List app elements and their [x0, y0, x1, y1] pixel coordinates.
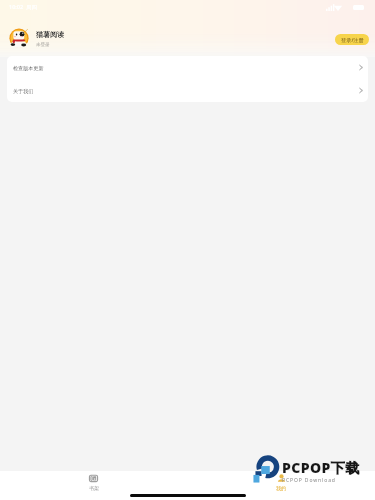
button[interactable]: 关于我们 [7, 79, 368, 102]
staticText: 猫薯阅读 [36, 30, 64, 39]
staticText: 未登录 [36, 42, 50, 48]
staticText: 我的 [276, 485, 286, 491]
staticText: 10:02 周四 [9, 3, 37, 11]
button[interactable]: 检查版本更新 [7, 56, 368, 79]
staticText: 关于我们 [13, 88, 34, 94]
button[interactable]: 我的 [187, 471, 375, 491]
staticText: PCPOP Download [282, 477, 336, 484]
staticText: 检查版本更新 [13, 65, 44, 71]
staticText: PCPOP下载 [282, 458, 360, 477]
staticText: 书架 [89, 485, 99, 491]
button[interactable]: 登录/注册 [335, 34, 369, 45]
staticText: 登录/注册 [341, 36, 364, 43]
button[interactable]: 书架 [0, 471, 187, 491]
